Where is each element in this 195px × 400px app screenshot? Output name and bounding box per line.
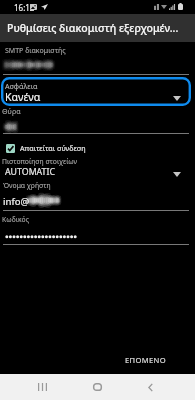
button[interactable]: Απαιτείται σύνδεση xyxy=(6,141,88,154)
staticText: Ρυθμίσεις διακομιστή εξερχομέν... xyxy=(7,21,179,35)
button[interactable]: Ασφάλεια xyxy=(1,77,191,106)
staticText: ΕΠΟΜΕΝΟ xyxy=(125,355,166,365)
staticText: SMTP διακομιστής xyxy=(5,46,66,56)
staticText: Απαιτείται σύνδεση xyxy=(20,143,86,153)
staticText: info@ xyxy=(3,195,30,208)
staticText: Κωδικός xyxy=(2,215,29,224)
button[interactable]: Πιστοποίηση στοιχείων xyxy=(0,156,195,179)
button[interactable]: Recent apps xyxy=(15,374,70,400)
staticText: Πιστοποίηση στοιχείων xyxy=(2,157,78,166)
staticText: Όνομα χρήστη xyxy=(3,181,51,190)
staticText: Θύρα xyxy=(2,106,21,116)
staticText: AUTOMATIC xyxy=(5,166,56,178)
button[interactable]: Back xyxy=(123,374,178,400)
staticText: 16:12 xyxy=(14,2,35,13)
button[interactable]: ΕΠΟΜΕΝΟ xyxy=(119,349,172,371)
button[interactable]: Home xyxy=(70,374,125,400)
staticText: Κανένα xyxy=(5,90,41,104)
staticText: Ασφάλεια xyxy=(5,81,38,91)
